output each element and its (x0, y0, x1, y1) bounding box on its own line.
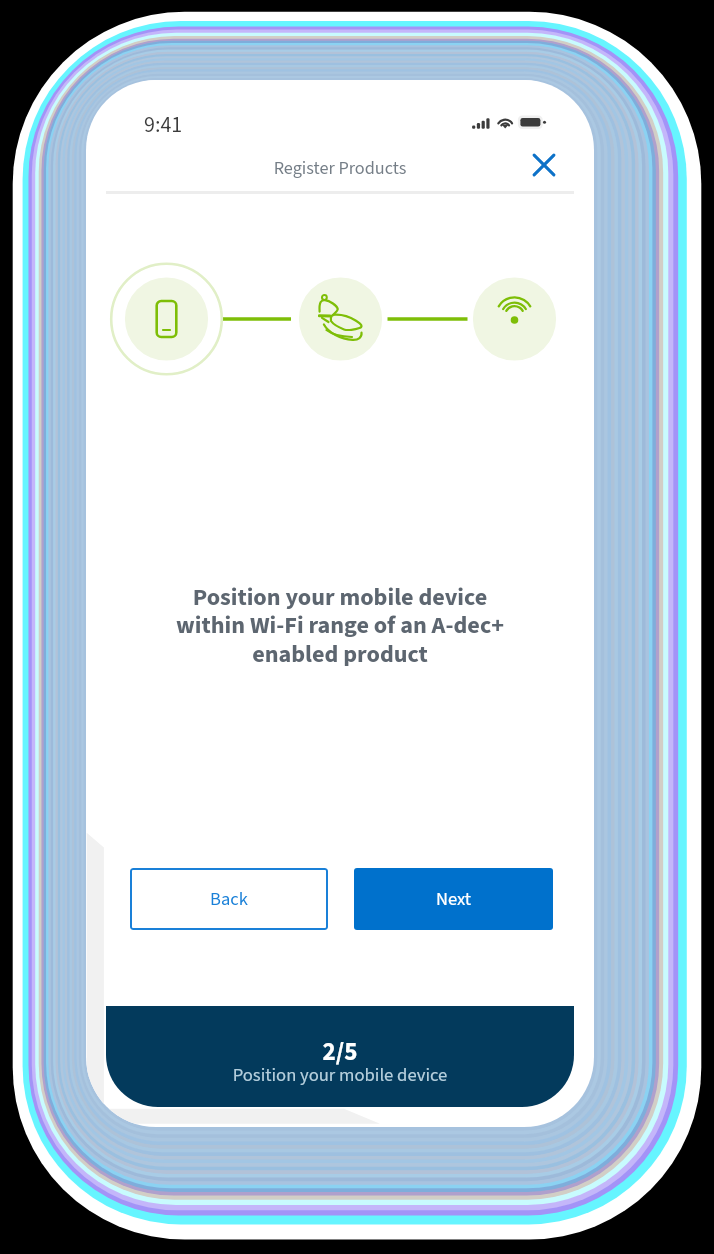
staticText: 2/5 (106, 1034, 574, 1070)
button[interactable]: Close (522, 143, 566, 187)
staticText: Register Products (106, 155, 574, 181)
staticText: Position your mobile device within Wi-Fi… (110, 580, 570, 672)
staticText: Next (436, 886, 472, 912)
staticText: 9:41 (144, 109, 183, 140)
button[interactable]: Back (130, 868, 328, 930)
button[interactable]: Next (354, 868, 553, 930)
staticText: Back (210, 886, 248, 912)
staticText: Position your mobile device (106, 1062, 574, 1088)
